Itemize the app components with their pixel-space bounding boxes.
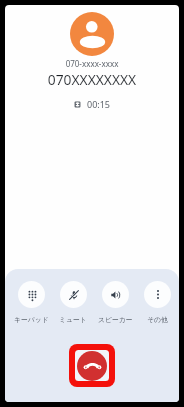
button[interactable]: その他 xyxy=(137,281,177,324)
staticText: 00:15 xyxy=(87,98,111,110)
button[interactable]: キーパッド xyxy=(11,281,51,324)
staticText: その他 xyxy=(147,315,168,324)
staticText: ミュート xyxy=(59,315,87,324)
button[interactable]: ミュート xyxy=(53,281,93,324)
button[interactable]: スピーカー xyxy=(95,281,135,324)
button[interactable]: End call xyxy=(75,350,109,381)
staticText: 070XXXXXXXX xyxy=(5,70,179,89)
staticText: キーパッド xyxy=(14,315,49,324)
staticText: スピーカー xyxy=(98,315,133,324)
staticText: 070-xxxx-xxxx xyxy=(5,58,179,69)
